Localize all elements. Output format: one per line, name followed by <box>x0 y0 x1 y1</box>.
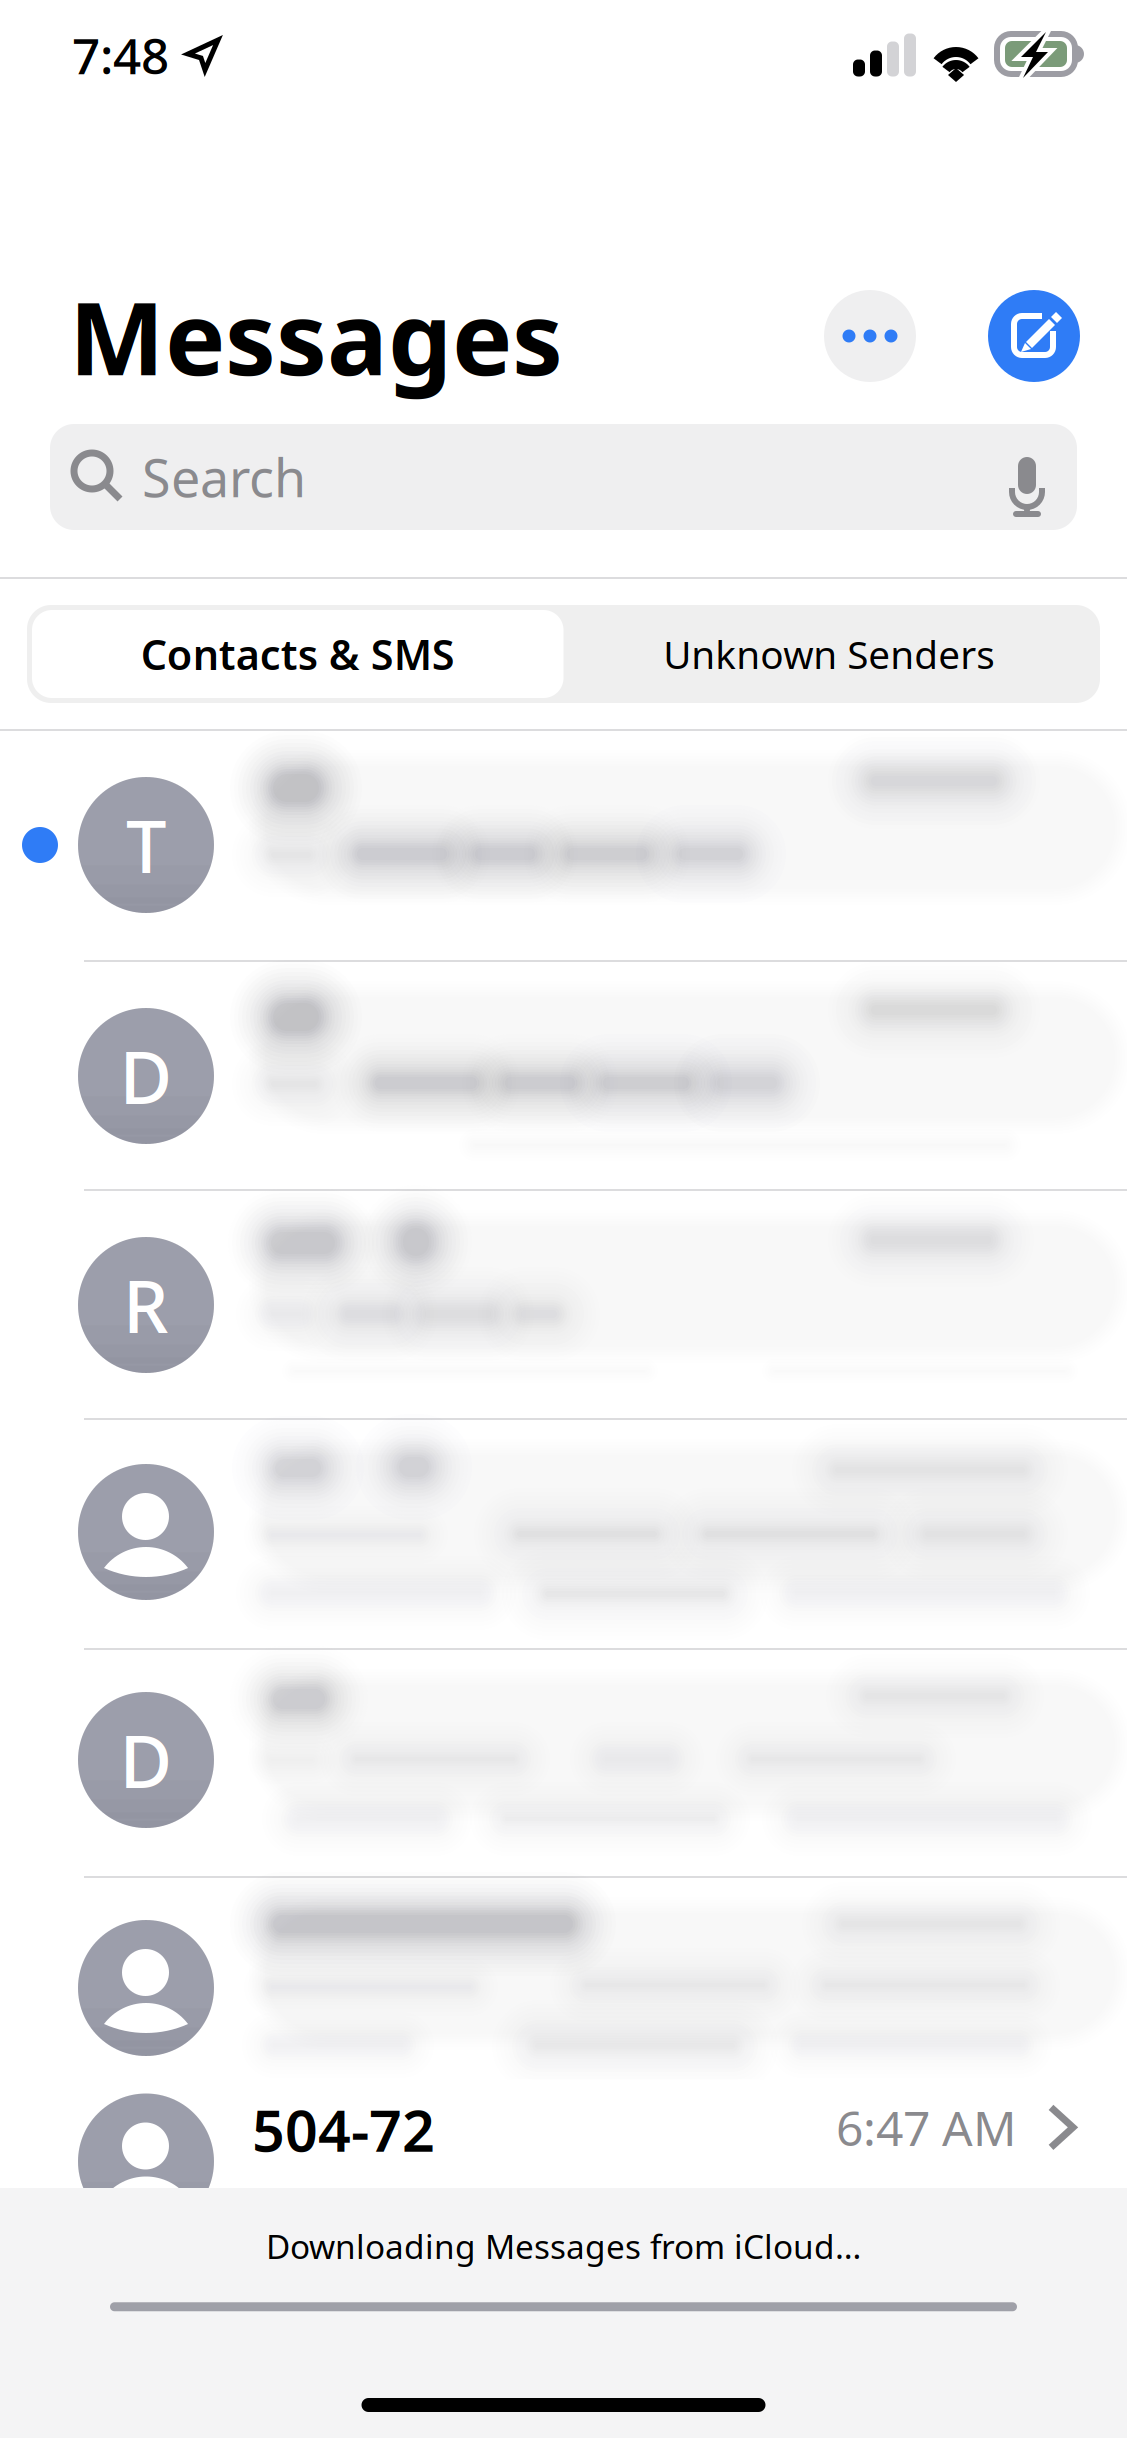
staticText: D <box>119 1712 172 1808</box>
button[interactable]: Search <box>50 424 1077 530</box>
button[interactable] <box>0 1878 1127 2105</box>
staticText: Search <box>142 442 306 512</box>
staticText: D <box>119 1028 172 1124</box>
button[interactable]: D <box>0 1650 1127 1876</box>
button[interactable]: R <box>0 1191 1127 1418</box>
staticText: Messages <box>69 269 563 403</box>
button[interactable]: Contacts & SMS <box>32 610 563 698</box>
staticText: R <box>123 1257 169 1353</box>
staticText: 7:48 <box>72 22 169 88</box>
staticText: Unknown Senders <box>663 628 995 680</box>
button[interactable] <box>0 1420 1127 1648</box>
button[interactable]: Unknown Senders <box>563 610 1095 698</box>
staticText: 6:47 AM <box>836 2095 1017 2159</box>
button[interactable]: D <box>0 962 1127 1189</box>
staticText: 504-72 <box>252 2091 435 2168</box>
button[interactable]: New Message <box>988 290 1080 382</box>
button[interactable]: T <box>0 731 1127 960</box>
button[interactable]: 504-72 <box>0 2107 1127 2188</box>
staticText: T <box>126 797 166 893</box>
button[interactable]: More options <box>824 290 916 382</box>
staticText: Contacts & SMS <box>141 627 455 681</box>
staticText: Downloading Messages from iCloud… <box>266 2224 861 2268</box>
